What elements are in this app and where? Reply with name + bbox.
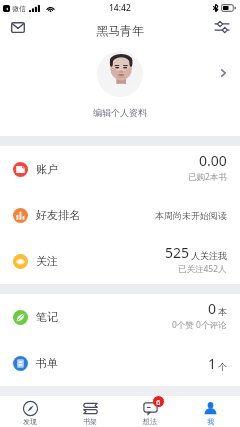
button[interactable]: 书架 <box>60 396 120 427</box>
staticText: 书架 <box>83 417 97 426</box>
button[interactable]: 6 <box>120 396 180 427</box>
staticText: 0.00 <box>199 151 227 170</box>
staticText: 关注 <box>36 254 58 268</box>
button[interactable]: 笔记 <box>0 294 240 340</box>
button[interactable]: Messages <box>6 15 30 39</box>
staticText: 1 <box>208 354 217 373</box>
staticText: 微信 <box>12 4 26 13</box>
staticText: 账户 <box>36 162 58 176</box>
staticText: 人关注我 <box>191 250 227 261</box>
button[interactable]: 我 <box>180 396 240 427</box>
staticText: 14:42 <box>109 2 131 14</box>
staticText: 本 <box>218 306 227 317</box>
button[interactable]: 关注 <box>0 238 240 284</box>
staticText: 6 <box>156 397 161 407</box>
staticText: 笔记 <box>36 310 58 324</box>
staticText: 发现 <box>23 417 37 426</box>
staticText: 书单 <box>36 356 58 370</box>
staticText: 0 <box>208 299 217 318</box>
staticText: 0个赞 0个评论 <box>172 319 227 331</box>
button[interactable]: 编辑个人资料 <box>0 45 240 136</box>
button[interactable]: 书单 <box>0 340 240 386</box>
staticText: 想法 <box>143 417 157 426</box>
staticText: 已关注452人 <box>178 263 227 275</box>
button[interactable]: 账户 <box>0 146 240 192</box>
staticText: 黑马青年 <box>96 23 144 38</box>
staticText: 好友排名 <box>36 208 80 222</box>
staticText: 525 <box>165 243 190 262</box>
staticText: 我 <box>207 417 214 426</box>
button[interactable]: 好友排名 <box>0 192 240 238</box>
button[interactable]: Settings <box>210 15 234 39</box>
staticText: 已购2本书 <box>188 171 227 183</box>
staticText: 个 <box>218 361 227 372</box>
staticText: 编辑个人资料 <box>93 107 147 118</box>
button[interactable]: 发现 <box>0 396 60 427</box>
staticText: 本周尚未开始阅读 <box>155 210 227 221</box>
